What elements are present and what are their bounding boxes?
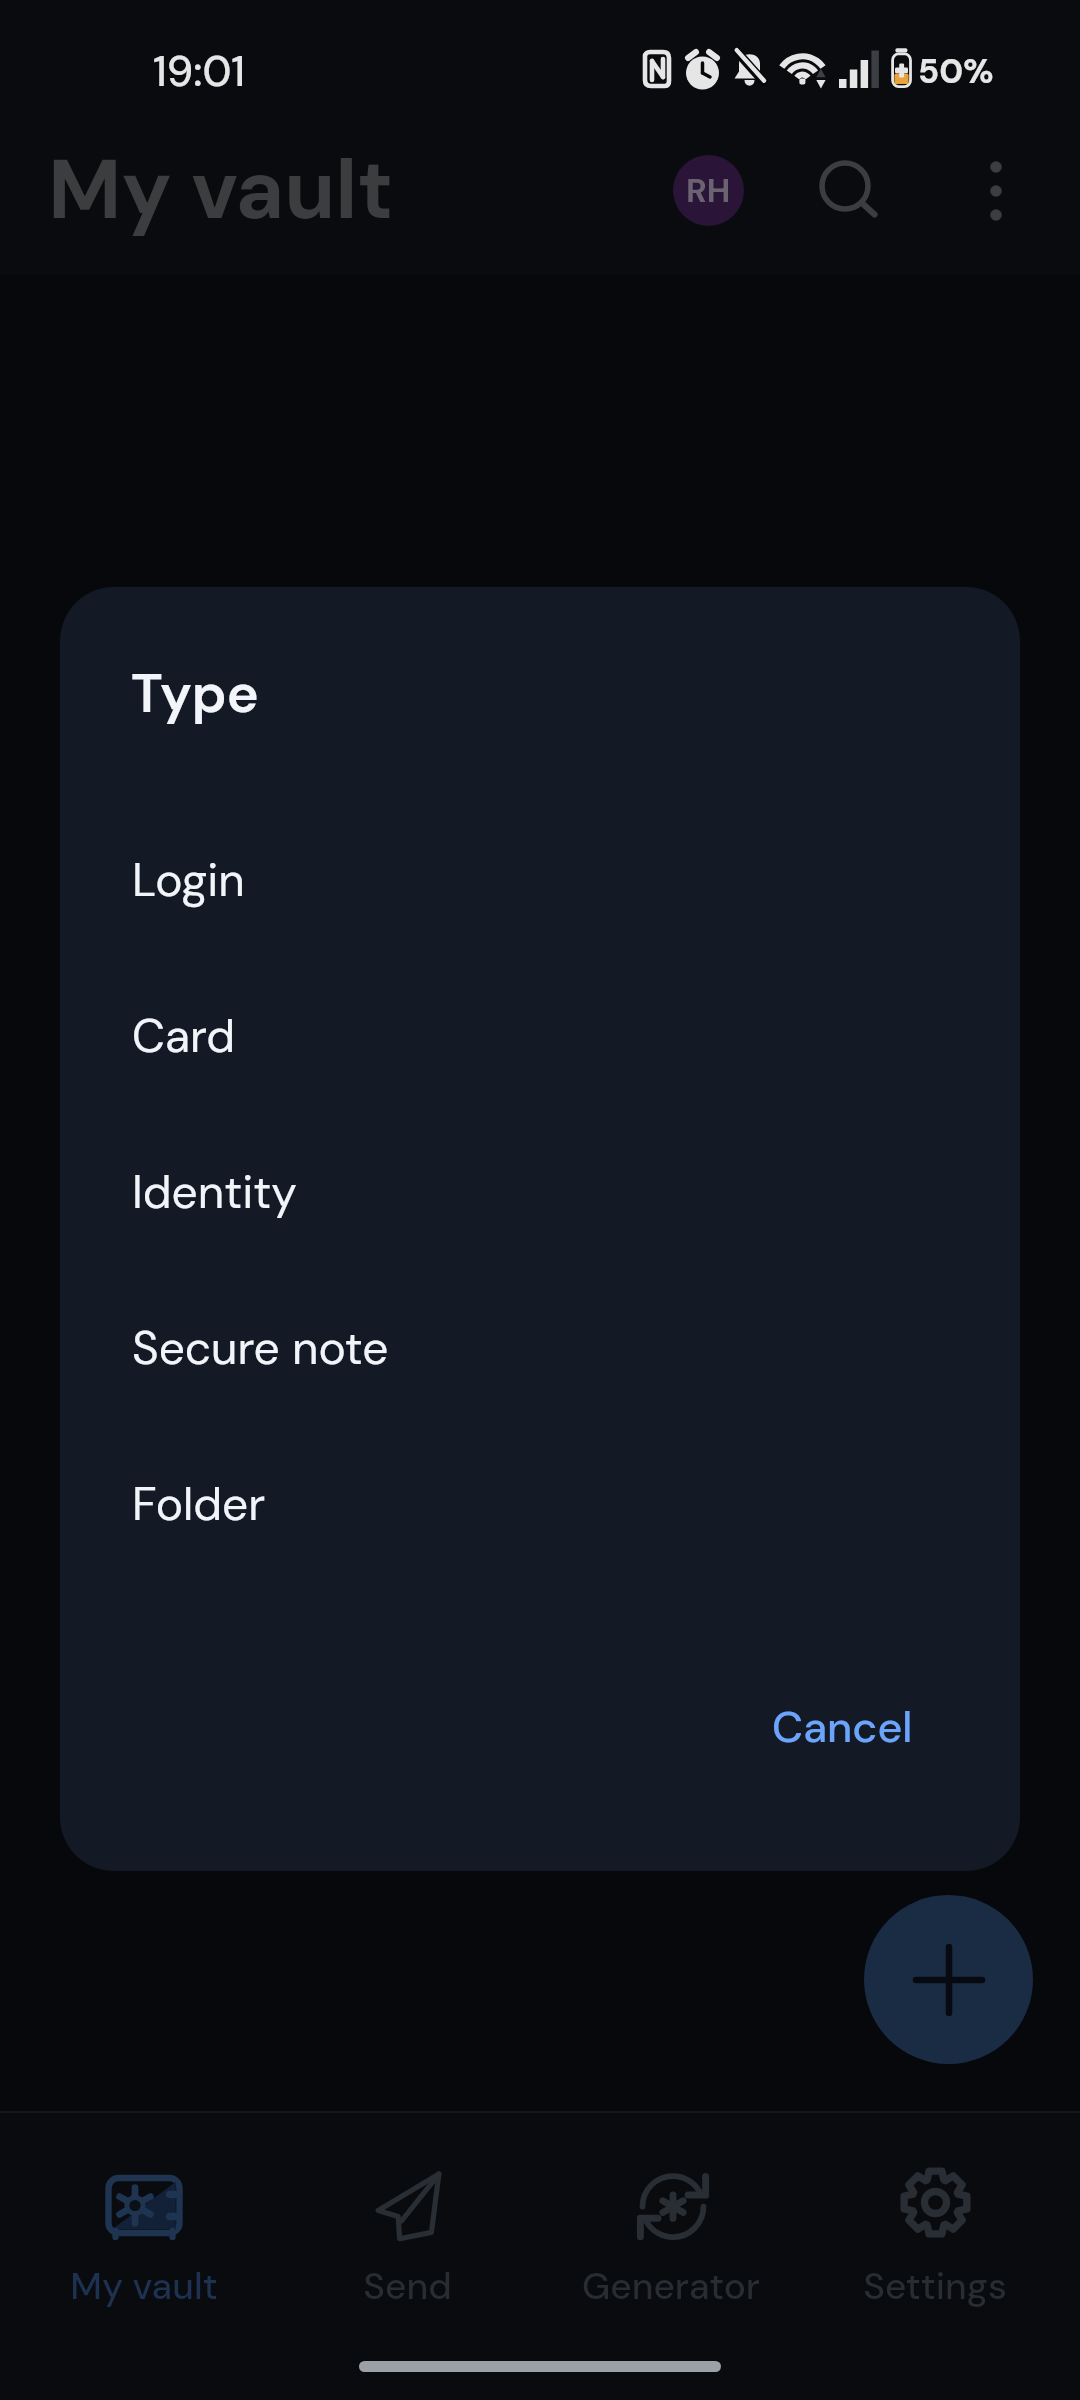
- staticText: 19:01: [153, 44, 246, 99]
- staticText: My vault: [70, 2262, 218, 2310]
- button[interactable]: Folder: [60, 1443, 1020, 1599]
- button[interactable]: Dismiss dialog: [0, 0, 1080, 2400]
- staticText: Generator: [582, 2262, 760, 2310]
- staticText: RH: [686, 169, 731, 212]
- staticText: Folder: [132, 1474, 266, 1534]
- staticText: Login: [132, 850, 245, 910]
- button[interactable]: Send: [275, 2136, 539, 2302]
- staticText: My vault: [48, 136, 394, 244]
- staticText: Settings: [863, 2262, 1007, 2310]
- button[interactable]: Cancel: [712, 1669, 973, 1785]
- button[interactable]: Login: [60, 819, 1020, 975]
- button[interactable]: Card: [60, 975, 1020, 1131]
- staticText: Identity: [132, 1162, 297, 1222]
- button[interactable]: Secure note: [60, 1287, 1020, 1443]
- button[interactable]: Add item: [864, 1895, 1033, 2064]
- staticText: Card: [132, 1006, 235, 1066]
- staticText: Send: [363, 2262, 452, 2310]
- button[interactable]: Settings: [803, 2136, 1067, 2302]
- staticText: Cancel: [772, 1699, 913, 1755]
- button[interactable]: Account: [655, 137, 762, 244]
- button[interactable]: More options: [942, 137, 1049, 244]
- staticText: Type: [131, 658, 259, 728]
- button[interactable]: Identity: [60, 1131, 1020, 1287]
- button[interactable]: Search: [795, 137, 902, 244]
- staticText: Secure note: [132, 1318, 389, 1378]
- staticText: 50%: [918, 49, 994, 93]
- button[interactable]: Generator: [539, 2136, 803, 2302]
- button[interactable]: My vault: [12, 2136, 276, 2302]
